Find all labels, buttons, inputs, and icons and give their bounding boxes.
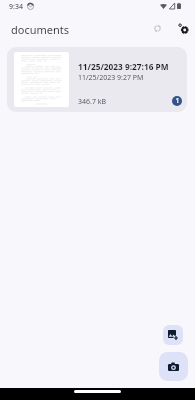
button[interactable]: 11/25/2023 9:27:16 PM [7, 47, 187, 112]
staticText: 11/25/2023 9:27:16 PM [78, 61, 169, 72]
staticText: 9:34 [9, 2, 23, 12]
staticText: 11/25/2023 9:27 PM [78, 73, 144, 83]
staticText: 1 [175, 96, 180, 106]
staticText: documents [11, 22, 70, 37]
staticText: 346.7 kB [78, 97, 106, 107]
button[interactable]: Take photo [159, 352, 188, 381]
button[interactable]: Sync [147, 18, 167, 38]
button[interactable]: Settings [173, 18, 193, 38]
button[interactable]: Add image [163, 325, 183, 345]
